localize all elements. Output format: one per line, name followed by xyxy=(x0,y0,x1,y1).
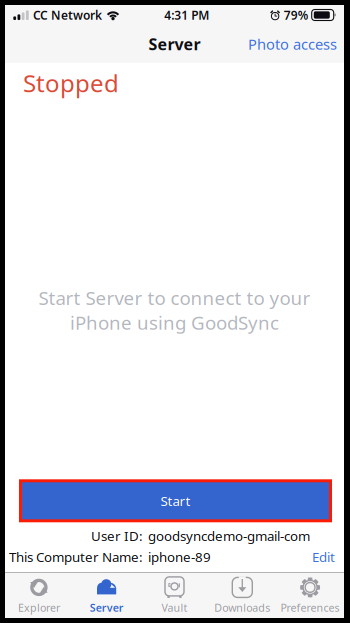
staticText: This Computer Name: xyxy=(9,548,143,566)
staticText: iphone-89 xyxy=(148,548,211,566)
button[interactable]: Explorer xyxy=(5,570,73,621)
button[interactable]: Edit xyxy=(312,548,335,566)
staticText: Explorer xyxy=(18,600,60,615)
staticText: Preferences xyxy=(281,600,340,615)
staticText: Downloads xyxy=(214,600,270,615)
button[interactable]: Start xyxy=(22,482,329,519)
staticText: Server xyxy=(90,600,124,615)
staticText: User ID: xyxy=(91,527,143,545)
staticText: Stopped xyxy=(23,67,119,99)
staticText: 79% xyxy=(284,7,309,23)
button[interactable]: Vault xyxy=(141,570,208,621)
staticText: Edit xyxy=(312,548,335,566)
staticText: Start Server to connect to your xyxy=(38,285,310,310)
staticText: Server xyxy=(148,33,200,55)
staticText: Vault xyxy=(161,600,187,615)
button[interactable]: Downloads xyxy=(208,570,276,621)
staticText: Start xyxy=(160,492,190,510)
staticText: iPhone using GoodSync xyxy=(70,310,279,335)
button[interactable]: Preferences xyxy=(276,570,344,621)
button[interactable]: Server xyxy=(73,570,141,621)
button[interactable]: Photo access xyxy=(240,26,344,62)
staticText: Photo access xyxy=(248,34,337,54)
staticText: 4:31 PM xyxy=(164,7,209,23)
staticText: CC Network xyxy=(33,7,102,23)
staticText: goodsyncdemo-gmail-com xyxy=(148,527,310,545)
